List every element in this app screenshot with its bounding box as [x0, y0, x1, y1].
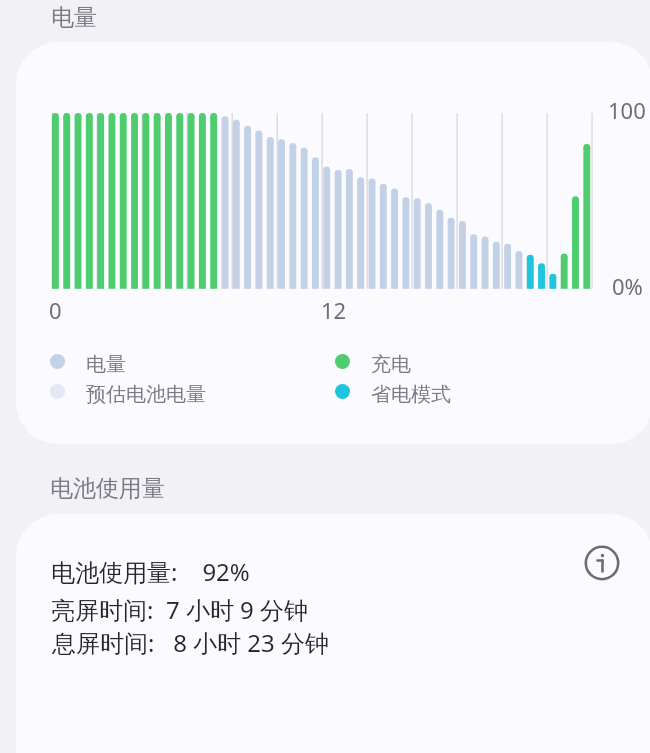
button[interactable]: 电量 [50, 349, 126, 374]
staticText: 12 [321, 295, 347, 325]
staticText: 电池使用量: 92% [51, 555, 250, 588]
staticText: 电量 [51, 3, 97, 32]
button[interactable]: 预估电池电量 [50, 379, 206, 404]
staticText: 息屏时间: 8 小时 23 分钟 [52, 626, 330, 659]
staticText: 省电模式 [371, 382, 451, 407]
button[interactable]: Information [580, 541, 624, 585]
staticText: 电池使用量 [50, 474, 165, 503]
staticText: 100 [608, 95, 646, 125]
button[interactable]: 省电模式 [335, 379, 451, 404]
staticText: 0% [612, 271, 643, 301]
staticText: 电量 [86, 352, 126, 377]
staticText: 亮屏时间: 7 小时 9 分钟 [51, 593, 309, 626]
staticText: 0 [49, 295, 62, 325]
button[interactable]: 电池使用量: 92% [16, 514, 650, 753]
button[interactable]: 充电 [335, 349, 411, 374]
button[interactable]: 100 [16, 42, 650, 444]
staticText: 预估电池电量 [86, 382, 206, 407]
staticText: 充电 [371, 352, 411, 377]
